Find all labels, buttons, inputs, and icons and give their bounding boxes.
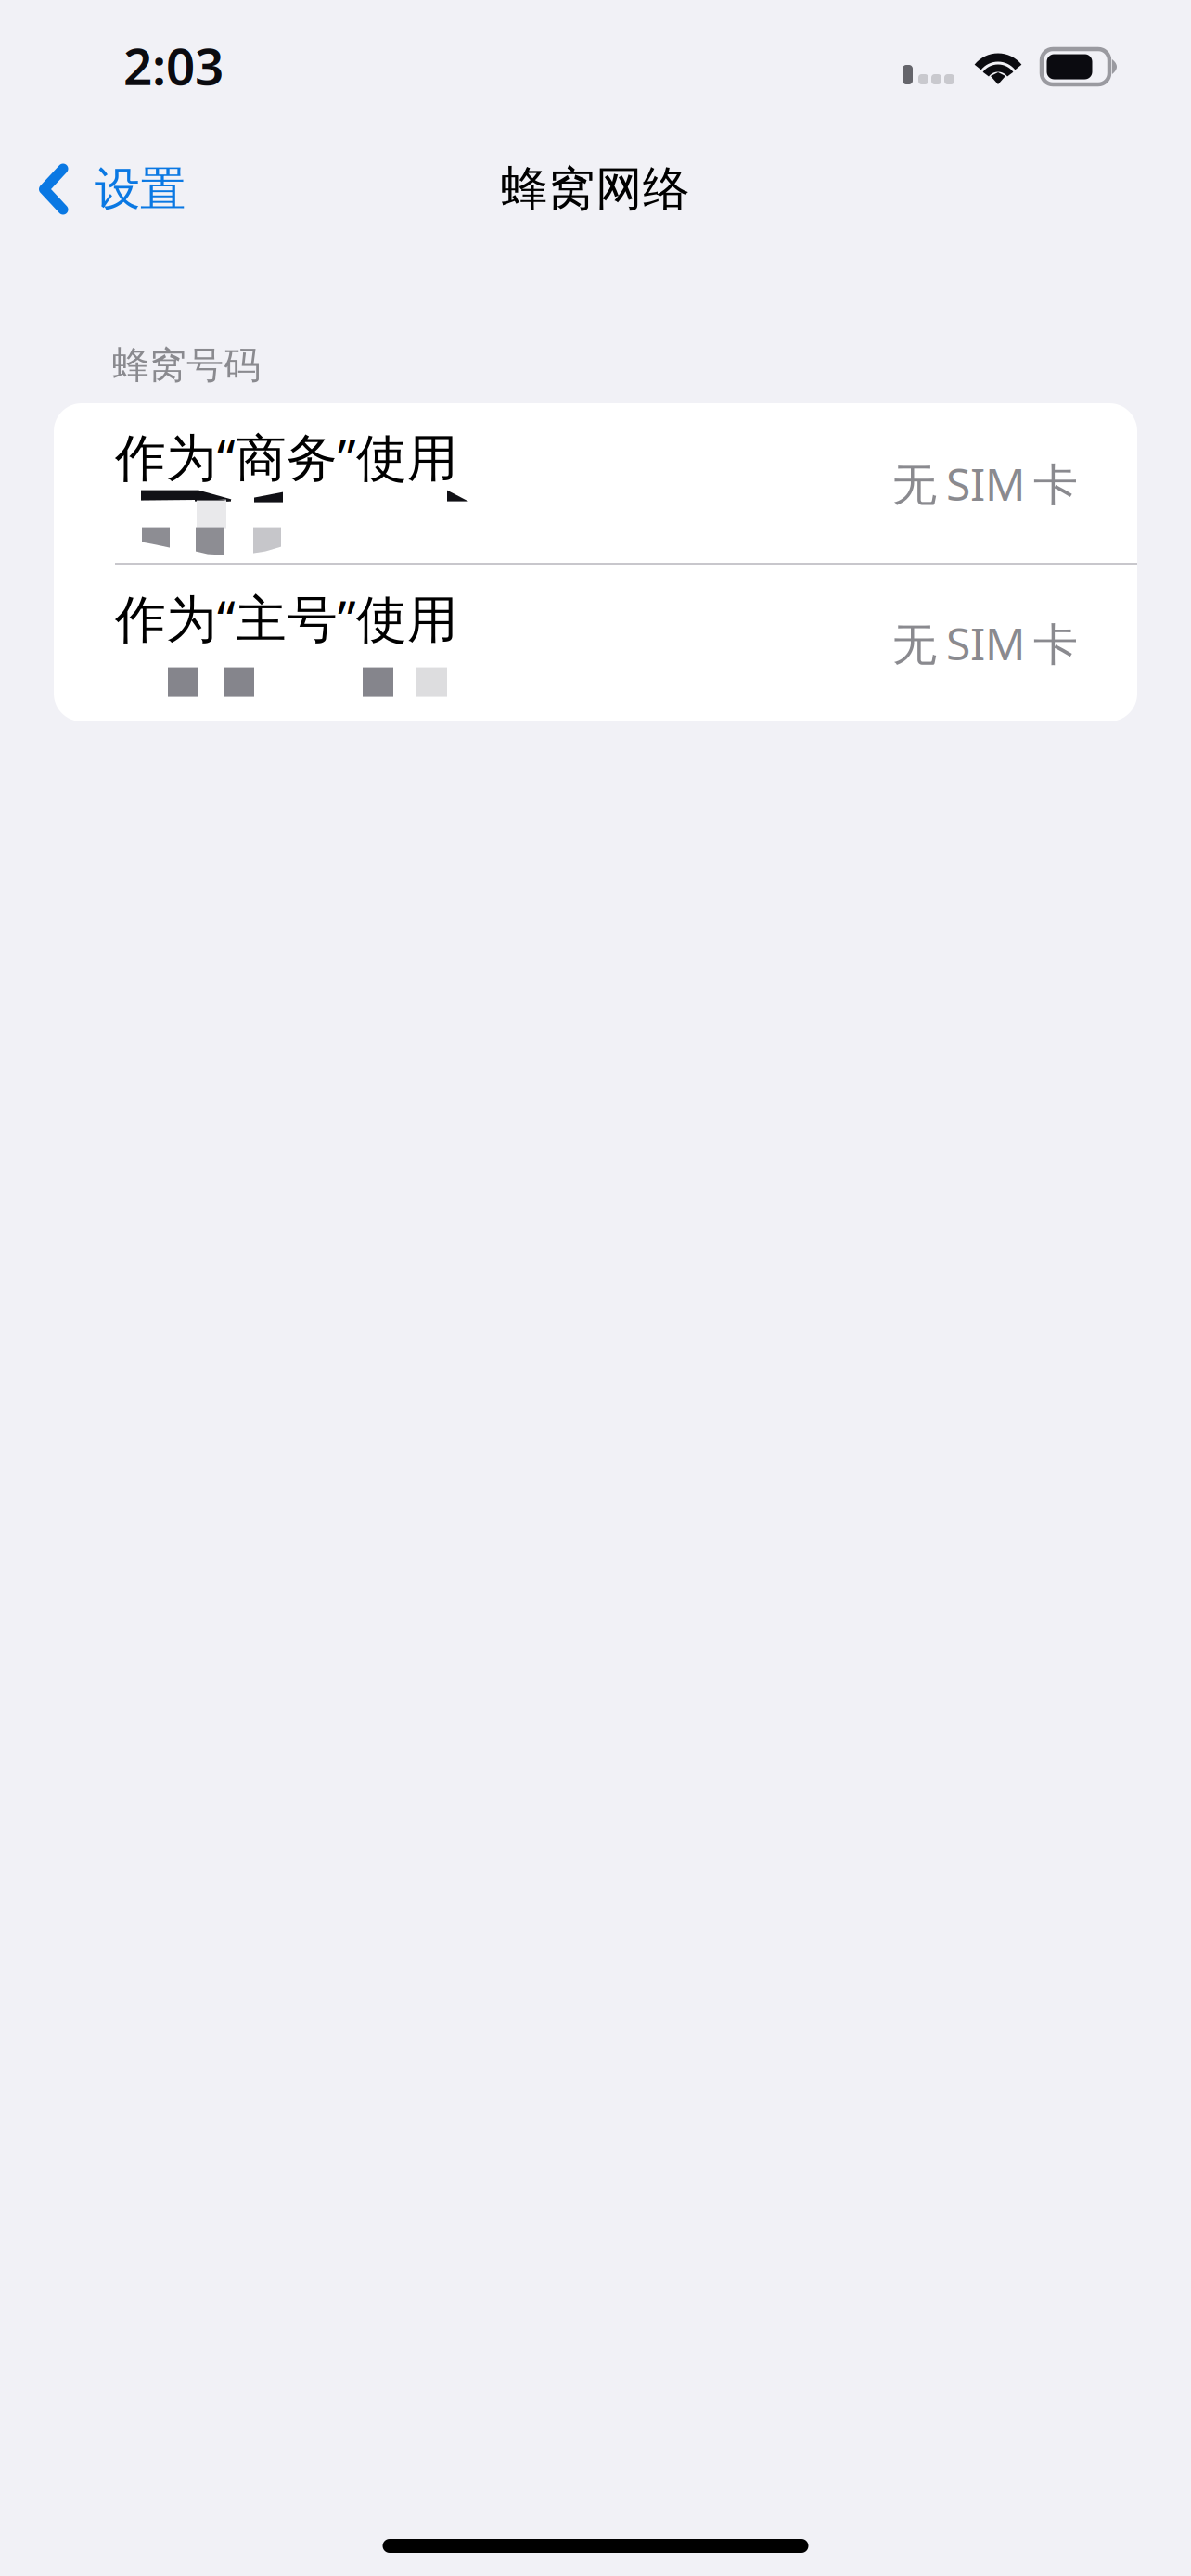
staticText: 设置 <box>95 161 186 217</box>
button[interactable]: 作为“主号”使用 <box>54 565 1137 721</box>
button[interactable]: 作为“商务”使用 <box>54 403 1137 563</box>
staticText: 蜂窝网络 <box>501 160 690 218</box>
button[interactable]: 返回设置 <box>0 133 210 246</box>
staticText: 作为“主号”使用 <box>115 584 458 652</box>
staticText: 无 SIM 卡 <box>892 613 1078 673</box>
staticText: 无 SIM 卡 <box>892 454 1078 513</box>
staticText: 作为“商务”使用 <box>115 423 458 490</box>
staticText: 2:03 <box>123 32 224 99</box>
staticText: 蜂窝号码 <box>112 343 261 388</box>
